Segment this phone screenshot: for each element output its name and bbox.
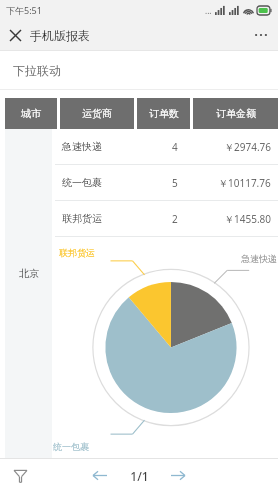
staticText: ￥10117.76 — [218, 176, 271, 190]
staticText: 北京 — [19, 267, 39, 280]
staticText: 统一包裹 — [62, 176, 102, 189]
staticText: 城市 — [21, 107, 41, 120]
staticText: 下拉联动 — [13, 63, 61, 78]
staticText: 4 — [172, 140, 178, 154]
staticText: 订单金额 — [216, 107, 256, 120]
staticText: 急速快递 — [62, 140, 102, 153]
staticText: 联邦货运 — [62, 212, 102, 225]
button[interactable]: 运货商 — [60, 98, 134, 129]
button[interactable]: 联邦货运 — [55, 201, 278, 236]
button[interactable]: 订单数 — [137, 98, 190, 129]
staticText: 订单数 — [149, 107, 179, 120]
staticText: 统一包裹 — [53, 441, 89, 452]
button[interactable]: 1/1 — [116, 468, 162, 484]
staticText: 联邦货运 — [59, 247, 95, 258]
button[interactable]: 北京 — [5, 129, 52, 458]
button[interactable]: Next page — [162, 459, 194, 492]
staticText: 2 — [172, 212, 178, 226]
button[interactable]: 急速快递 — [55, 129, 278, 164]
staticText: ... — [205, 5, 212, 16]
staticText: 手机版报表 — [30, 28, 90, 43]
staticText: 运货商 — [82, 107, 112, 120]
button[interactable]: Close — [0, 20, 30, 50]
button[interactable]: Filter — [0, 459, 40, 492]
button[interactable]: More options — [244, 20, 278, 50]
staticText: ￥1455.80 — [224, 212, 271, 226]
button[interactable]: 统一包裹 — [55, 165, 278, 200]
button[interactable]: 城市 — [5, 98, 57, 129]
staticText: 急速快递 — [241, 253, 277, 264]
staticText: 5 — [172, 176, 178, 190]
staticText: 1/1 — [130, 468, 149, 484]
button[interactable]: Previous page — [84, 459, 116, 492]
staticText: ￥2974.76 — [224, 140, 271, 154]
button[interactable]: 订单金额 — [193, 98, 278, 129]
staticText: 下午5:51 — [6, 4, 42, 16]
